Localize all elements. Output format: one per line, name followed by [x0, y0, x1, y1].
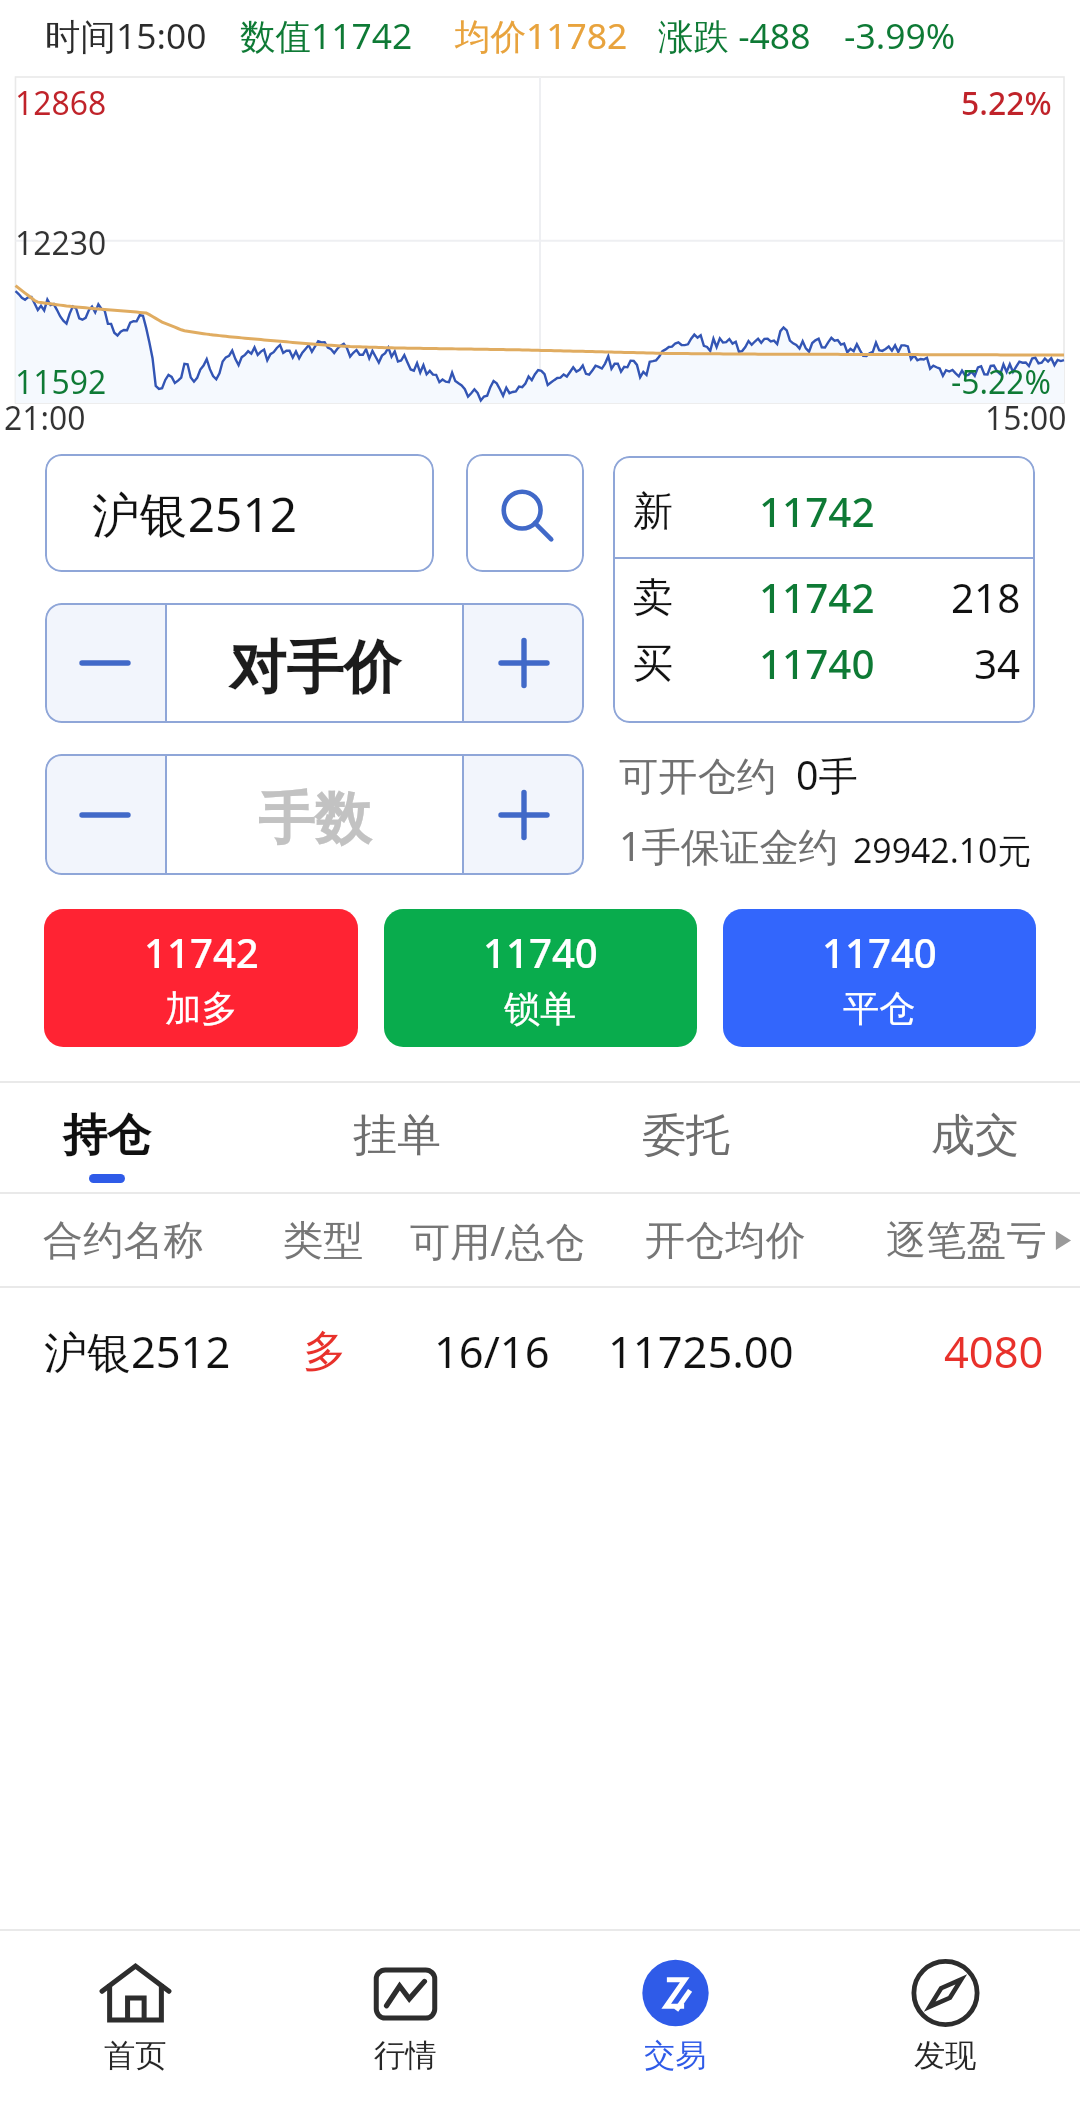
staticText: 11742 [144, 925, 259, 980]
staticText: 11740 [483, 925, 598, 980]
staticText: -3.99% [844, 11, 956, 59]
button[interactable]: 行情 [270, 1931, 540, 2103]
button[interactable]: 首页 [0, 1931, 270, 2103]
staticText: 均价11782 [455, 11, 628, 59]
staticText: 218 [951, 570, 1021, 625]
staticText: 可开仓约 [619, 752, 777, 802]
button[interactable]: Decrease [45, 603, 165, 723]
button[interactable]: 挂单 [309, 1083, 485, 1192]
staticText: 11740 [822, 925, 937, 980]
staticText: 时间15:00 [45, 11, 207, 59]
button[interactable]: Decrease [45, 754, 165, 875]
staticText: 买 [633, 638, 674, 689]
staticText: 类型 [283, 1215, 364, 1266]
staticText: 开仓均价 [645, 1215, 806, 1266]
staticText: 0手 [796, 748, 858, 802]
staticText: 首页 [104, 2036, 167, 2075]
staticText: 34 [974, 636, 1021, 691]
staticText: 委托 [642, 1108, 730, 1163]
staticText: 平仓 [843, 986, 916, 1032]
button[interactable]: 11740 [384, 909, 697, 1047]
staticText: 新 [633, 486, 674, 537]
staticText: 11592 [15, 360, 107, 403]
staticText: 29942.10元 [853, 827, 1032, 873]
staticText: 21:00 [4, 396, 86, 430]
staticText: 5.22% [961, 81, 1052, 124]
staticText: 15:00 [985, 396, 1067, 430]
button[interactable]: 对手价 [167, 603, 462, 723]
staticText: 卖 [633, 572, 674, 623]
button[interactable]: Search [466, 454, 584, 572]
staticText: 11742 [759, 570, 875, 625]
staticText: 1手保证金约 [619, 819, 839, 873]
button[interactable]: 沪银2512 [45, 454, 434, 572]
staticText: 沪银2512 [92, 481, 298, 546]
button[interactable]: Increase [464, 754, 584, 875]
button[interactable]: 交易 [540, 1931, 810, 2103]
staticText: 多 [303, 1324, 347, 1379]
button[interactable]: 沪银2512 [0, 1288, 1080, 1415]
staticText: 涨跌 -488 [658, 11, 811, 59]
staticText: -5.22% [951, 360, 1052, 403]
staticText: 11740 [759, 636, 875, 691]
staticText: 加多 [165, 986, 238, 1032]
staticText: 11725.00 [608, 1322, 794, 1381]
button[interactable]: 发现 [810, 1931, 1080, 2103]
button[interactable]: 11740 [723, 909, 1036, 1047]
staticText: 沪银2512 [44, 1322, 231, 1381]
button[interactable]: 成交 [887, 1083, 1063, 1192]
staticText: 持仓 [63, 1108, 151, 1163]
staticText: 发现 [914, 2036, 977, 2075]
staticText: 16/16 [434, 1322, 550, 1381]
staticText: 数值11742 [240, 11, 413, 59]
staticText: 合约名称 [43, 1215, 204, 1266]
staticText: 逐笔盈亏 [886, 1215, 1047, 1266]
button[interactable]: 手数 [167, 754, 462, 875]
button[interactable]: 11742 [44, 909, 358, 1047]
staticText: 成交 [931, 1108, 1019, 1163]
staticText: 12868 [15, 81, 107, 124]
button[interactable]: Increase [464, 603, 584, 723]
staticText: 对手价 [229, 632, 401, 704]
staticText: 挂单 [353, 1108, 441, 1163]
staticText: 可用/总仓 [410, 1213, 586, 1268]
staticText: 11742 [759, 484, 875, 539]
staticText: 交易 [644, 2036, 707, 2075]
staticText: 手数 [258, 784, 371, 855]
button[interactable]: 持仓 [19, 1083, 195, 1192]
staticText: 12230 [15, 221, 107, 264]
staticText: 锁单 [504, 986, 577, 1032]
button[interactable]: 委托 [598, 1083, 774, 1192]
staticText: 4080 [944, 1322, 1044, 1381]
staticText: 行情 [374, 2036, 437, 2075]
